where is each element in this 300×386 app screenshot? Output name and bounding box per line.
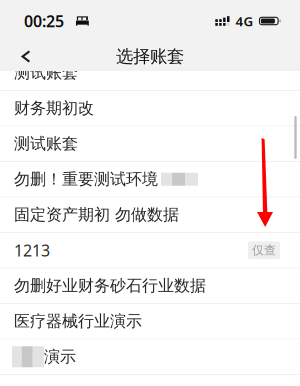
button[interactable]: 固定资产期初 勿做数据 <box>0 197 300 232</box>
staticText: 固定资产期初 勿做数据 <box>14 205 179 225</box>
staticText: 选择账套 <box>116 46 184 67</box>
button[interactable]: 返回 <box>11 41 41 71</box>
button[interactable]: 演示 <box>0 339 300 374</box>
staticText: 演示 <box>44 347 76 367</box>
button[interactable]: 勿删好业财务砂石行业数据 <box>0 268 300 303</box>
staticText: 仅查 <box>252 243 276 258</box>
button[interactable]: 医疗器械行业演示 <box>0 304 300 338</box>
button[interactable]: 测试账套 <box>0 126 300 161</box>
staticText: 4G <box>235 12 253 30</box>
staticText: 1213 <box>14 240 50 261</box>
staticText: 勿删！重要测试环境 <box>14 169 158 189</box>
staticText: 勿删好业财务砂石行业数据 <box>14 276 206 296</box>
button[interactable]: 测试账套 <box>0 55 300 90</box>
staticText: 测试账套 <box>14 63 78 83</box>
staticText: 医疗器械行业演示 <box>14 311 142 331</box>
staticText: 00:25 <box>24 10 64 32</box>
button[interactable]: 财务期初改 <box>0 91 300 125</box>
staticText: 测试账套 <box>14 134 78 154</box>
button[interactable]: 1213 <box>0 233 300 267</box>
button[interactable]: 勿删！重要测试环境 <box>0 162 300 196</box>
staticText: 财务期初改 <box>14 98 94 118</box>
